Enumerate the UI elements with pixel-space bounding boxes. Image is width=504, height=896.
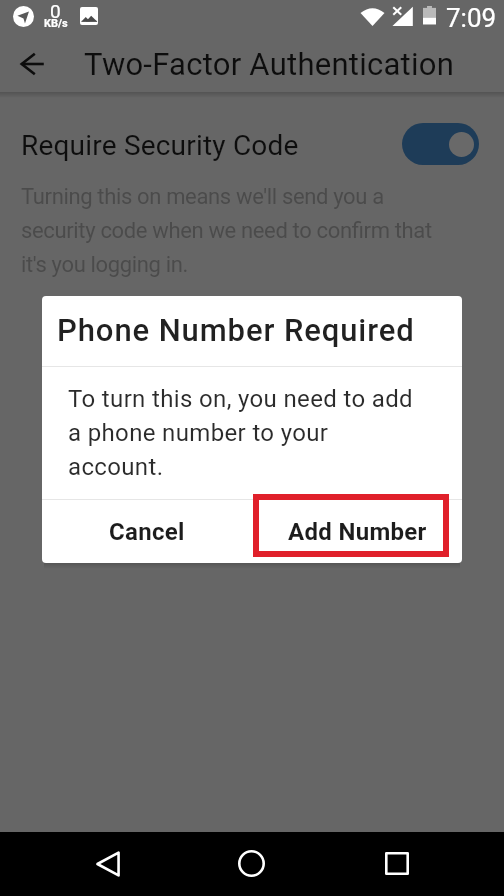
staticText: KB/s xyxy=(44,17,68,30)
staticText: To turn this on, you need to add a phone… xyxy=(68,385,413,481)
staticText: Require Security Code xyxy=(21,129,299,162)
button[interactable]: Recent apps xyxy=(368,835,425,892)
button[interactable]: Home xyxy=(223,835,280,892)
button[interactable]: Back xyxy=(79,835,136,892)
staticText: Turning this on means we'll send you a s… xyxy=(21,184,432,277)
button[interactable]: Require Security Code toggle, on xyxy=(402,123,479,165)
button[interactable]: Add Number xyxy=(252,500,462,563)
staticText: Phone Number Required xyxy=(57,312,415,348)
staticText: Cancel xyxy=(109,518,185,546)
button[interactable]: Require Security Code xyxy=(0,92,504,169)
button[interactable]: Cancel xyxy=(42,500,252,563)
button[interactable]: Navigate up xyxy=(4,36,60,92)
staticText: 7:09 xyxy=(446,3,497,33)
staticText: Add Number xyxy=(288,518,427,546)
staticText: Two-Factor Authentication xyxy=(84,46,455,82)
staticText: 0 xyxy=(50,0,61,22)
